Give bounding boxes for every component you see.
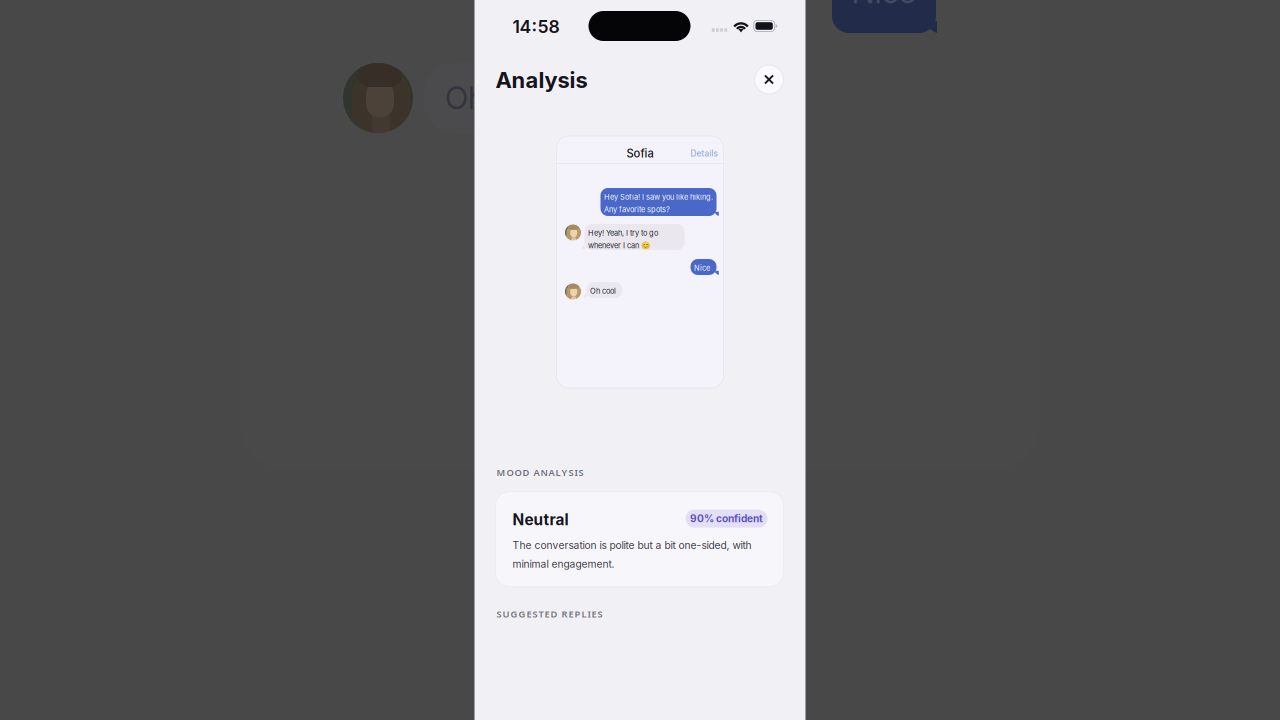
staticText: Hey Sofia! I saw you like hiking. Any fa… [604, 192, 713, 214]
staticText: Nice [694, 263, 710, 272]
staticText: MOOD ANALYSIS [496, 466, 583, 479]
staticText: Analysis [495, 67, 587, 93]
staticText: Neutral [512, 510, 568, 529]
staticText: 14:58 [512, 16, 559, 37]
staticText: 90% confident [690, 512, 763, 525]
staticText: Hey! Yeah, I try to go whenever I can 😊 [588, 228, 658, 250]
staticText: Nice [851, 0, 916, 11]
button[interactable]: Close [754, 65, 783, 94]
staticText: Oh cool [445, 79, 553, 116]
staticText: Details [690, 148, 717, 158]
staticText: SUGGESTED REPLIES [496, 608, 602, 620]
staticText: The conversation is polite but a bit one… [512, 539, 751, 570]
staticText: Oh cool [590, 286, 616, 295]
staticText: Sofia [626, 147, 653, 160]
